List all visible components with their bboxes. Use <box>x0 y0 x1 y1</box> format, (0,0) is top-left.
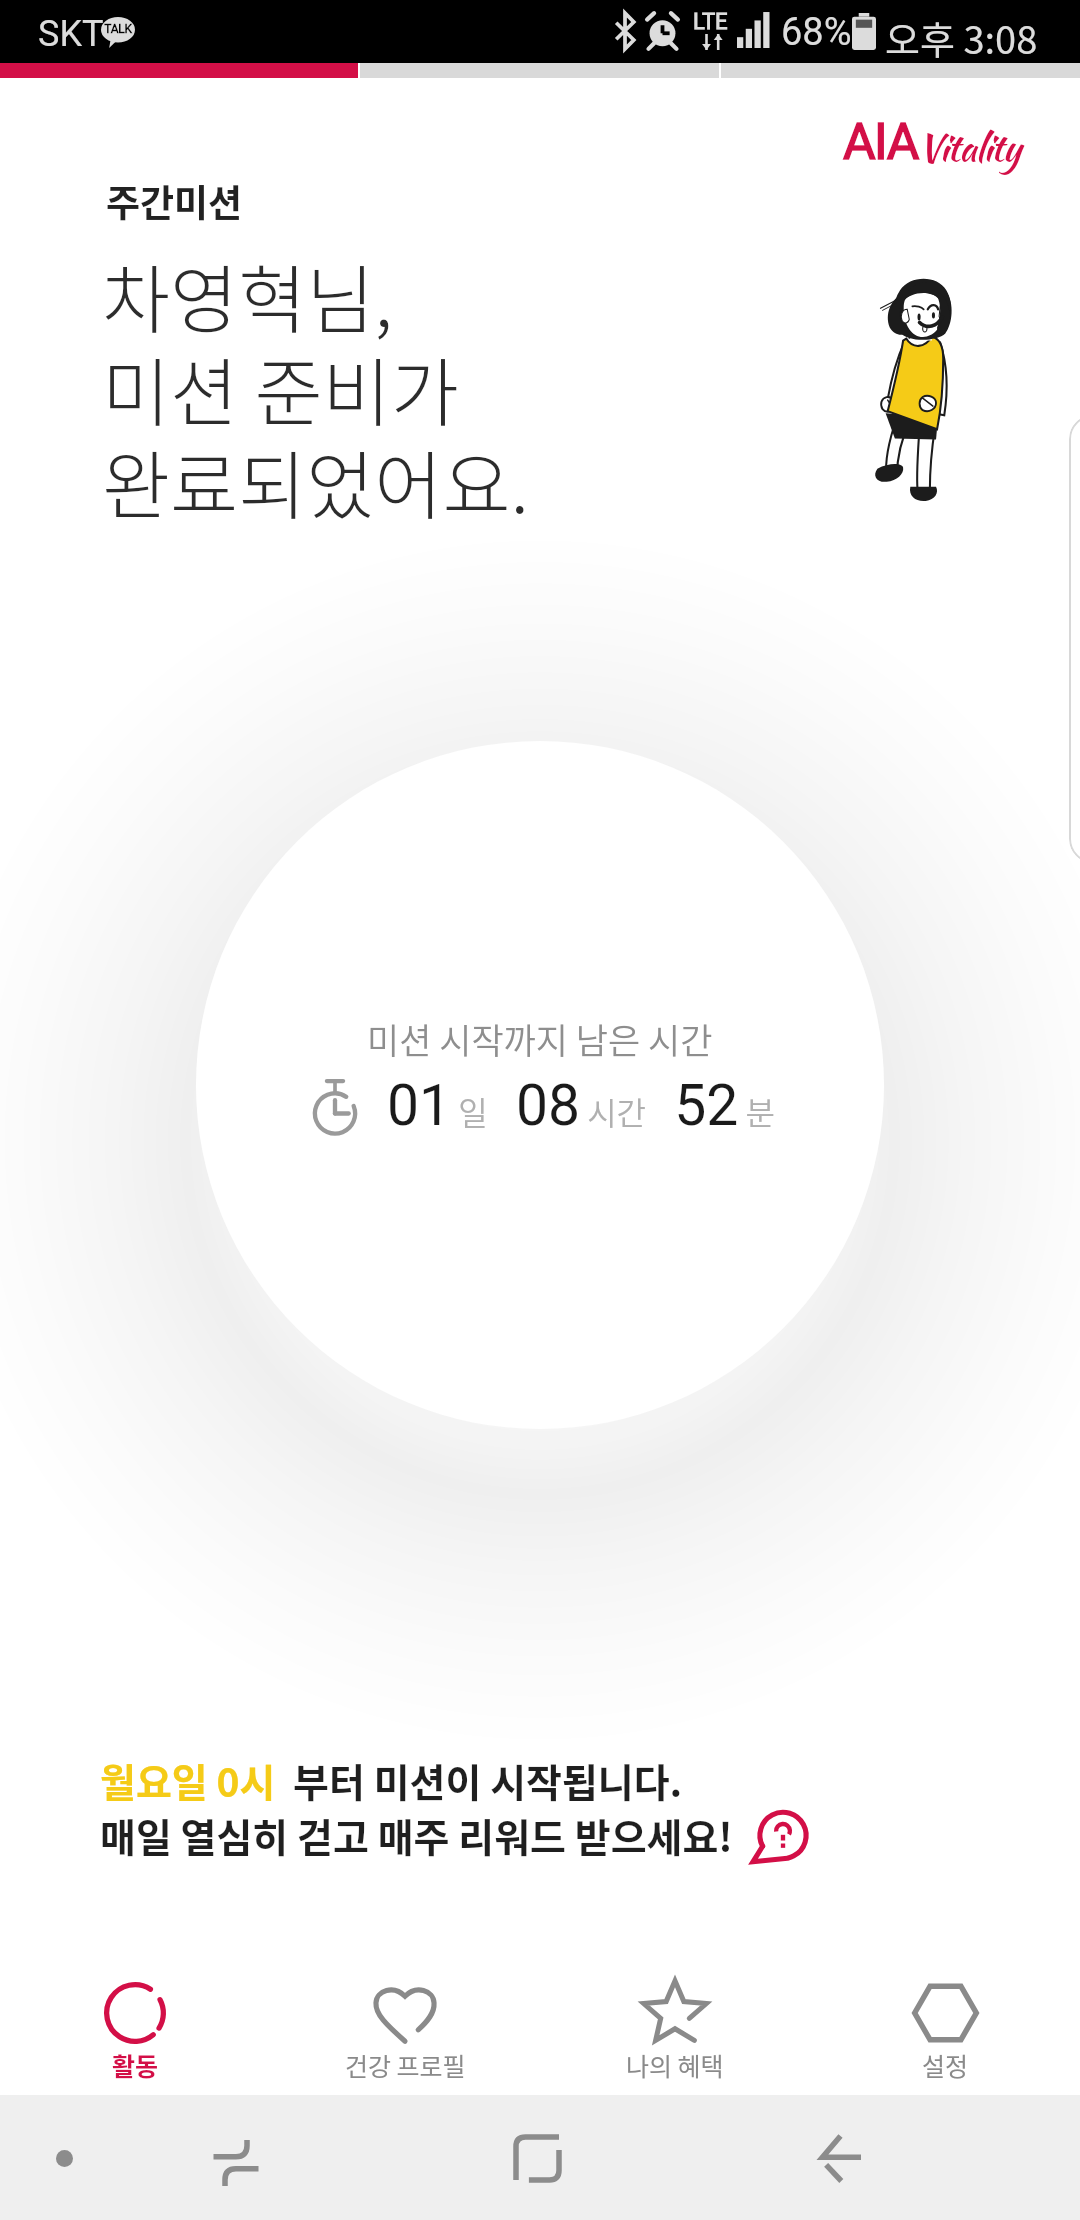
staticText: 나의 혜택 <box>626 2047 724 2083</box>
button[interactable]: Home <box>496 2117 578 2199</box>
button[interactable]: 나의 혜택 <box>540 1930 810 2095</box>
staticText: 주간미션 <box>106 174 243 228</box>
button[interactable]: Recents <box>195 2122 277 2204</box>
button[interactable]: 건강 프로필 <box>270 1930 540 2095</box>
staticText: 매일 열심히 걷고 매주 리워드 받으세요! <box>100 1807 733 1863</box>
staticText: 활동 <box>112 2047 159 2083</box>
staticText: SKT <box>38 13 104 55</box>
staticText: 01 일 08 시간 52 분 <box>387 1072 775 1139</box>
button[interactable]: 활동 <box>0 1930 270 2095</box>
staticText: 오후 3:08 <box>885 10 1038 65</box>
button[interactable]: AIA <box>843 113 1020 172</box>
button[interactable]: Back <box>799 2117 881 2199</box>
button[interactable] <box>1069 415 1080 863</box>
staticText: AIA <box>843 113 918 172</box>
button[interactable]: 설정 <box>810 1930 1080 2095</box>
staticText: 차영혁님, 미션 준비가 완료되었어요. <box>102 241 529 534</box>
staticText: Vitality <box>918 120 1020 175</box>
staticText: 미션 시작까지 남은 시간 <box>367 1013 713 1064</box>
staticText: LTE <box>693 9 728 35</box>
staticText: 설정 <box>922 2047 969 2083</box>
staticText: TALK <box>103 22 133 36</box>
staticText: 68% <box>781 10 852 55</box>
staticText: 건강 프로필 <box>345 2047 466 2083</box>
button[interactable]: 도움말 <box>750 1809 810 1869</box>
button[interactable]: More <box>48 2142 80 2174</box>
staticText: 월요일 0시 부터 미션이 시작됩니다. <box>100 1752 683 1808</box>
